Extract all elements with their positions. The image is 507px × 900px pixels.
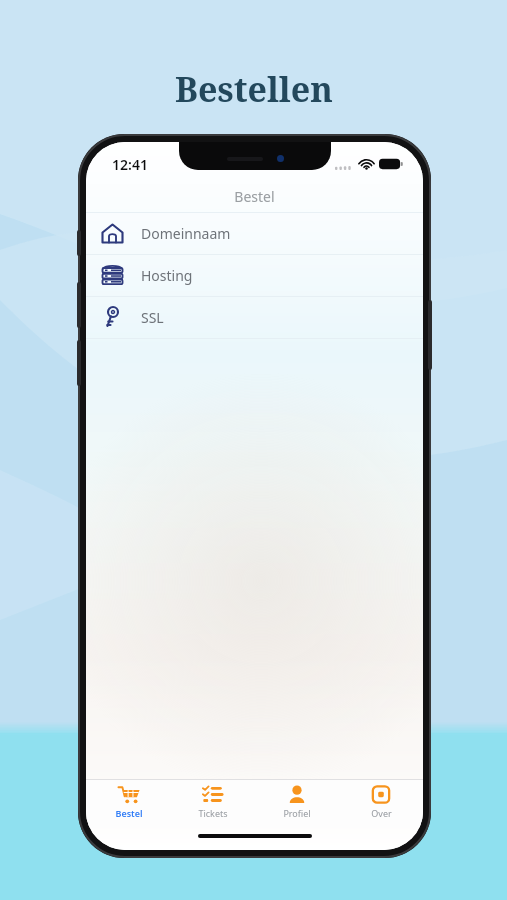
button[interactable]: Bestel xyxy=(86,780,171,828)
button[interactable]: Tickets xyxy=(171,780,255,828)
staticText: Hosting xyxy=(141,266,193,285)
staticText: Domeinnaam xyxy=(141,224,231,243)
button[interactable]: Domeinnaam xyxy=(86,213,423,254)
button[interactable]: SSL xyxy=(86,297,423,338)
staticText: Bestel xyxy=(234,187,275,206)
staticText: Tickets xyxy=(198,807,228,819)
button[interactable]: Hosting xyxy=(86,255,423,296)
staticText: Bestellen xyxy=(175,66,333,112)
staticText: 12:41 xyxy=(112,155,148,174)
staticText: Bestel xyxy=(115,807,143,819)
button[interactable]: Profiel xyxy=(255,780,339,828)
button[interactable]: Over xyxy=(339,780,423,828)
staticText: SSL xyxy=(141,308,164,327)
staticText: Profiel xyxy=(283,807,311,819)
staticText: Over xyxy=(371,807,392,819)
